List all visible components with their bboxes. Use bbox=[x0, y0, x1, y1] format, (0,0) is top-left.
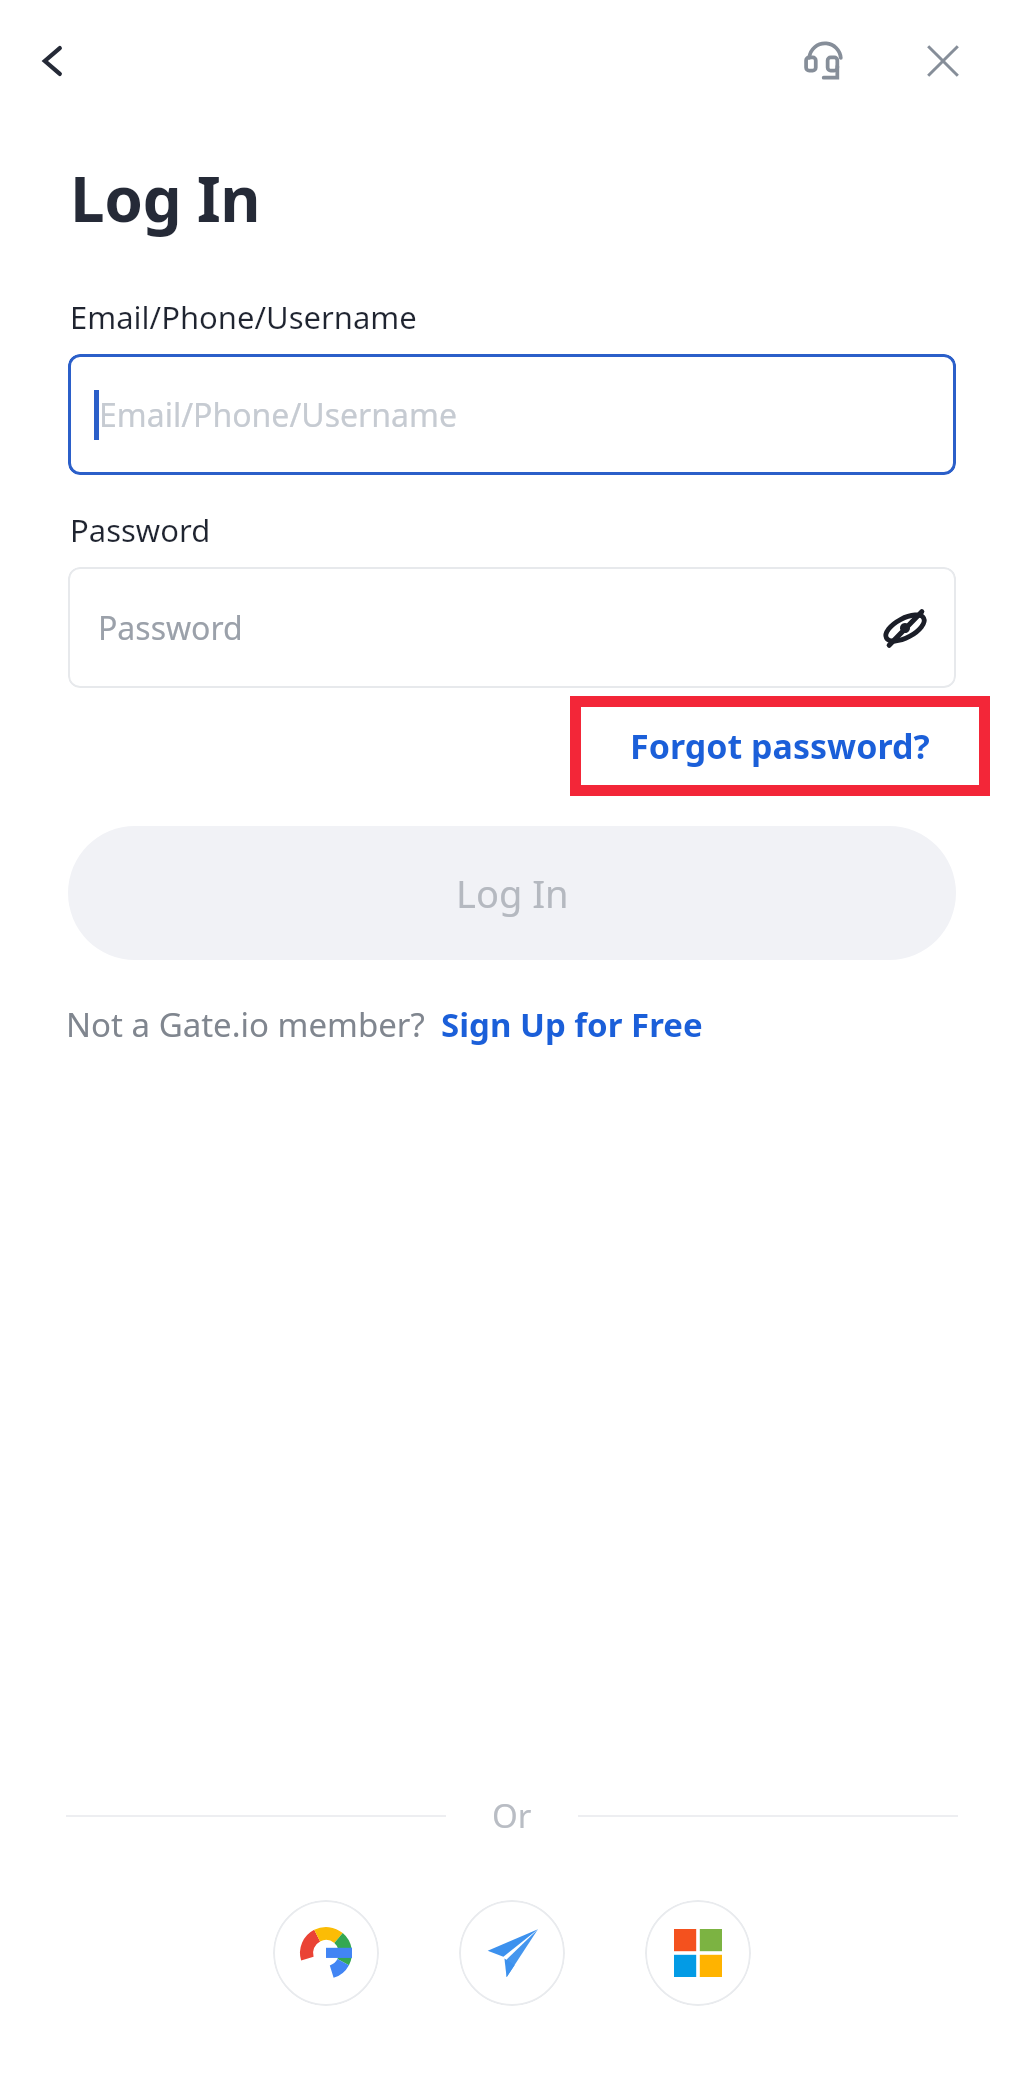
button[interactable]: Password bbox=[68, 567, 956, 688]
staticText: Sign Up for Free bbox=[441, 1002, 703, 1047]
staticText: Forgot password? bbox=[630, 723, 930, 769]
button[interactable]: Show password bbox=[868, 591, 942, 665]
button[interactable]: Sign in with Microsoft bbox=[645, 1900, 751, 2006]
button[interactable]: Email/Phone/Username bbox=[68, 354, 956, 475]
button[interactable]: Sign Up for Free bbox=[441, 1002, 703, 1047]
button[interactable]: Close bbox=[908, 26, 978, 96]
staticText: Not a Gate.io member? bbox=[66, 1002, 425, 1047]
button[interactable]: Sign in with Telegram bbox=[459, 1900, 565, 2006]
button[interactable]: Forgot password? bbox=[581, 707, 979, 785]
button[interactable]: Log In bbox=[68, 826, 956, 960]
staticText: Email/Phone/Username bbox=[99, 393, 457, 437]
staticText: Email/Phone/Username bbox=[70, 296, 417, 338]
staticText: Or bbox=[492, 1793, 532, 1838]
button[interactable]: Back bbox=[22, 30, 84, 92]
button[interactable]: Sign in with Google bbox=[273, 1900, 379, 2006]
staticText: Log In bbox=[456, 867, 569, 919]
staticText: Log In bbox=[70, 156, 261, 240]
staticText: Password bbox=[98, 606, 243, 650]
staticText: Password bbox=[70, 509, 211, 551]
button[interactable]: Customer support bbox=[790, 26, 860, 96]
